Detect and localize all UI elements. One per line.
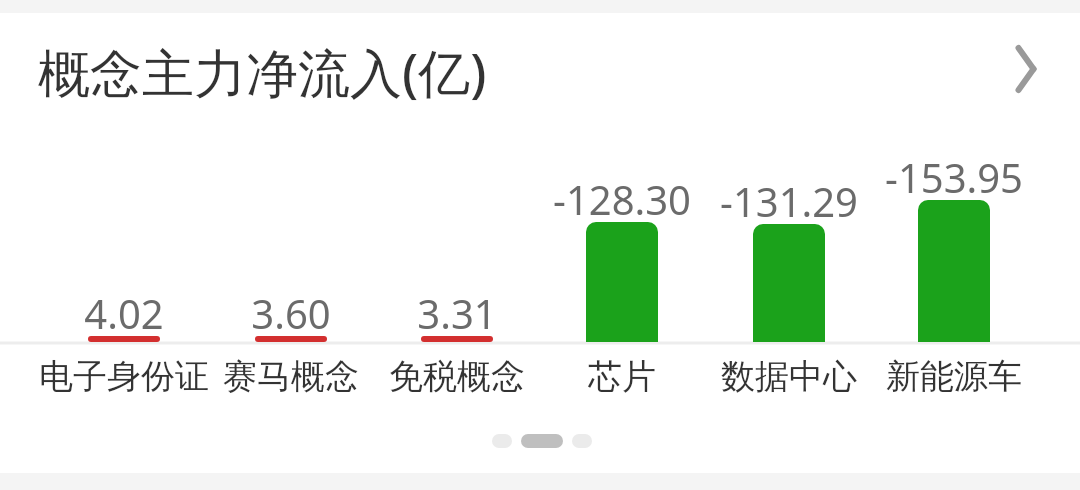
button[interactable]: 电子身份证 (14, 352, 234, 400)
staticText: 赛马概念 (223, 355, 359, 398)
button[interactable]: 免税概念 (347, 352, 567, 400)
staticText: -131.29 (720, 174, 858, 220)
staticText: -128.30 (553, 172, 691, 218)
staticText: 3.60 (251, 286, 331, 332)
button[interactable]: 芯片 (512, 352, 732, 400)
button[interactable]: 数据中心 (679, 352, 899, 400)
staticText: 数据中心 (721, 355, 857, 398)
staticText: 新能源车 (886, 355, 1022, 398)
staticText: 4.02 (84, 286, 164, 332)
staticText: 3.31 (417, 286, 497, 332)
button[interactable]: 新能源车 (844, 352, 1064, 400)
button[interactable]: 概念主力净流入(亿) (0, 13, 1080, 125)
staticText: 概念主力净流入(亿) (38, 36, 487, 107)
staticText: 电子身份证 (39, 355, 209, 398)
button[interactable]: 赛马概念 (181, 352, 401, 400)
staticText: 免税概念 (389, 355, 525, 398)
staticText: -153.95 (885, 150, 1023, 196)
staticText: 芯片 (588, 355, 656, 398)
button[interactable]: 查看更多 (1002, 41, 1058, 97)
